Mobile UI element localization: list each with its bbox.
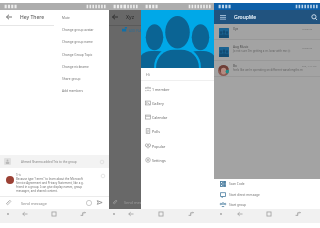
- staticText: Jo not sure I'm getting a rn. bear with …: [233, 49, 291, 53]
- button[interactable]: Home: [49, 209, 59, 219]
- staticText: Bo: [233, 64, 237, 68]
- button[interactable]: Recents: [186, 209, 196, 219]
- button[interactable]: Home: [264, 209, 274, 219]
- button[interactable]: Back: [20, 209, 30, 219]
- button[interactable]: Bo: [214, 61, 320, 77]
- staticText: Tris: [16, 173, 21, 177]
- staticText: Calendar: [152, 115, 168, 120]
- button[interactable]: Send: [96, 199, 103, 206]
- button[interactable]: Start direct message: [214, 190, 320, 201]
- button[interactable]: Recents: [78, 209, 88, 219]
- staticText: Share group: [62, 77, 81, 81]
- button[interactable]: Mute: [54, 12, 109, 24]
- staticText: Change group name: [62, 40, 93, 44]
- staticText: GroupMe: [234, 14, 257, 21]
- button[interactable]: Settings: [141, 153, 214, 167]
- staticText: feels like we're operating on different …: [233, 68, 303, 72]
- staticText: Hi: [146, 72, 150, 77]
- staticText: 1 member: [152, 87, 170, 92]
- staticText: 10:00 PM: [302, 27, 313, 30]
- staticText: Start direct message: [229, 193, 260, 197]
- staticText: ADD PLA: [129, 29, 142, 33]
- button[interactable]: Search: [311, 14, 318, 21]
- staticText: Sun, 1:11 AM: [302, 64, 317, 67]
- button[interactable]: Share group: [54, 73, 109, 85]
- staticText: Change Group Topic: [62, 53, 93, 57]
- button[interactable]: Gallery: [141, 96, 214, 110]
- button[interactable]: Change Group Topic: [54, 49, 109, 61]
- button[interactable]: Back: [126, 209, 136, 219]
- button[interactable]: Change group avatar: [54, 24, 109, 36]
- button[interactable]: Back: [235, 209, 245, 219]
- button[interactable]: Assistant: [3, 209, 13, 219]
- button[interactable]: Open navigation menu: [220, 14, 226, 20]
- button[interactable]: Recents: [293, 209, 303, 219]
- staticText: Popular: [152, 144, 166, 149]
- button[interactable]: Start group: [214, 200, 320, 211]
- staticText: Hey There: [20, 14, 45, 21]
- staticText: Settings: [152, 158, 166, 163]
- button[interactable]: Home: [156, 209, 166, 219]
- staticText: Because type "terms" to learn about the …: [16, 177, 84, 193]
- button[interactable]: Change group name: [54, 36, 109, 48]
- staticText: Mute: [62, 16, 70, 20]
- staticText: Aug Music: [233, 45, 249, 49]
- button[interactable]: Scan Code: [214, 179, 320, 190]
- button[interactable]: Back: [0, 10, 109, 24]
- button[interactable]: Aug Music: [214, 39, 320, 61]
- staticText: Start group: [229, 203, 247, 207]
- button[interactable]: Change nickname: [54, 61, 109, 73]
- staticText: Change group avatar: [62, 28, 94, 32]
- staticText: Scan Code: [229, 182, 245, 186]
- staticText: Change nickname: [62, 65, 89, 69]
- staticText: Gallery: [152, 101, 164, 106]
- staticText: Polls: [152, 129, 160, 134]
- button[interactable]: Assistant: [216, 209, 226, 219]
- staticText: Xyz: [233, 27, 238, 31]
- staticText: Ahmed Sharma added Tris to the group: [21, 160, 77, 164]
- button[interactable]: Polls: [141, 124, 214, 138]
- staticText: Send message: [21, 201, 47, 206]
- button[interactable]: Popular: [141, 139, 214, 153]
- button[interactable]: Add members: [54, 85, 109, 97]
- other: Back: [6, 14, 12, 20]
- button[interactable]: Calendar: [141, 110, 214, 124]
- staticText: 10:00 PM: [302, 46, 313, 49]
- button[interactable]: Assistant: [109, 209, 119, 219]
- staticText: Send messa: [124, 200, 146, 205]
- button[interactable]: Emoji: [86, 200, 92, 206]
- staticText: Add members: [62, 89, 84, 93]
- button[interactable]: Xyz: [214, 24, 320, 39]
- button[interactable]: 1 member: [141, 82, 214, 96]
- button[interactable]: Attach file: [5, 199, 12, 206]
- staticText: Xyz: [126, 14, 135, 21]
